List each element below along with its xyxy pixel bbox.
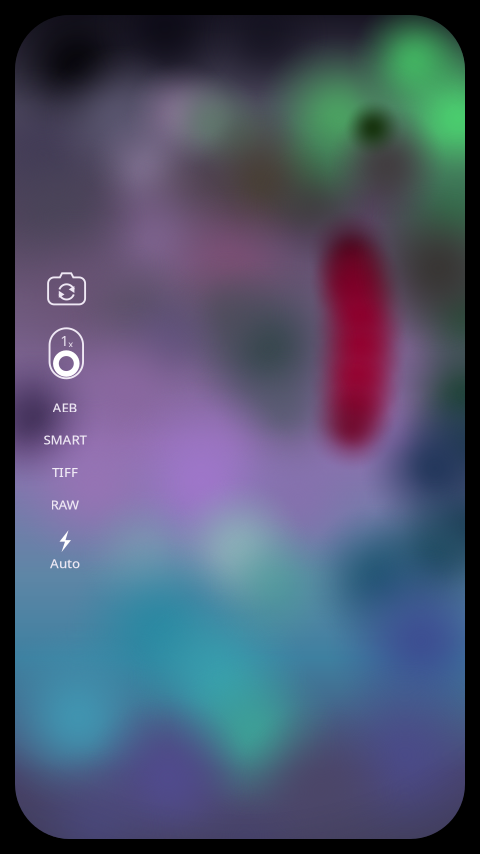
button[interactable]: Zoom 1x	[34, 324, 98, 382]
staticText: TIFF	[52, 463, 78, 481]
staticText: RAW	[50, 495, 79, 513]
button[interactable]: SMART	[33, 424, 97, 454]
button[interactable]: Flash auto	[33, 529, 97, 573]
button[interactable]: TIFF	[33, 457, 97, 487]
button[interactable]: Switch camera	[35, 267, 99, 311]
staticText: x	[68, 338, 73, 350]
staticText: 1	[60, 331, 68, 350]
staticText: AEB	[52, 398, 77, 416]
staticText: SMART	[43, 430, 86, 448]
staticText: Auto	[50, 554, 80, 572]
button[interactable]: AEB	[33, 392, 97, 422]
button[interactable]: RAW	[33, 489, 97, 519]
